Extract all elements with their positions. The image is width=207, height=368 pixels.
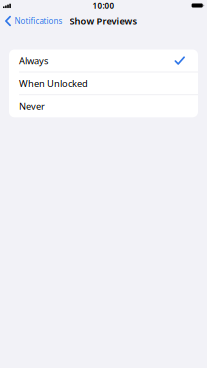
staticText: Notifications <box>14 16 62 26</box>
staticText: Show Previews <box>69 15 137 27</box>
button[interactable]: When Unlocked <box>9 72 198 94</box>
staticText: 10:00 <box>92 0 114 11</box>
staticText: When Unlocked <box>19 77 88 90</box>
staticText: Never <box>19 100 45 112</box>
button[interactable]: Never <box>9 95 198 117</box>
button[interactable]: Always <box>9 49 198 72</box>
staticText: Always <box>19 54 48 67</box>
button[interactable]: Notifications <box>0 16 62 26</box>
